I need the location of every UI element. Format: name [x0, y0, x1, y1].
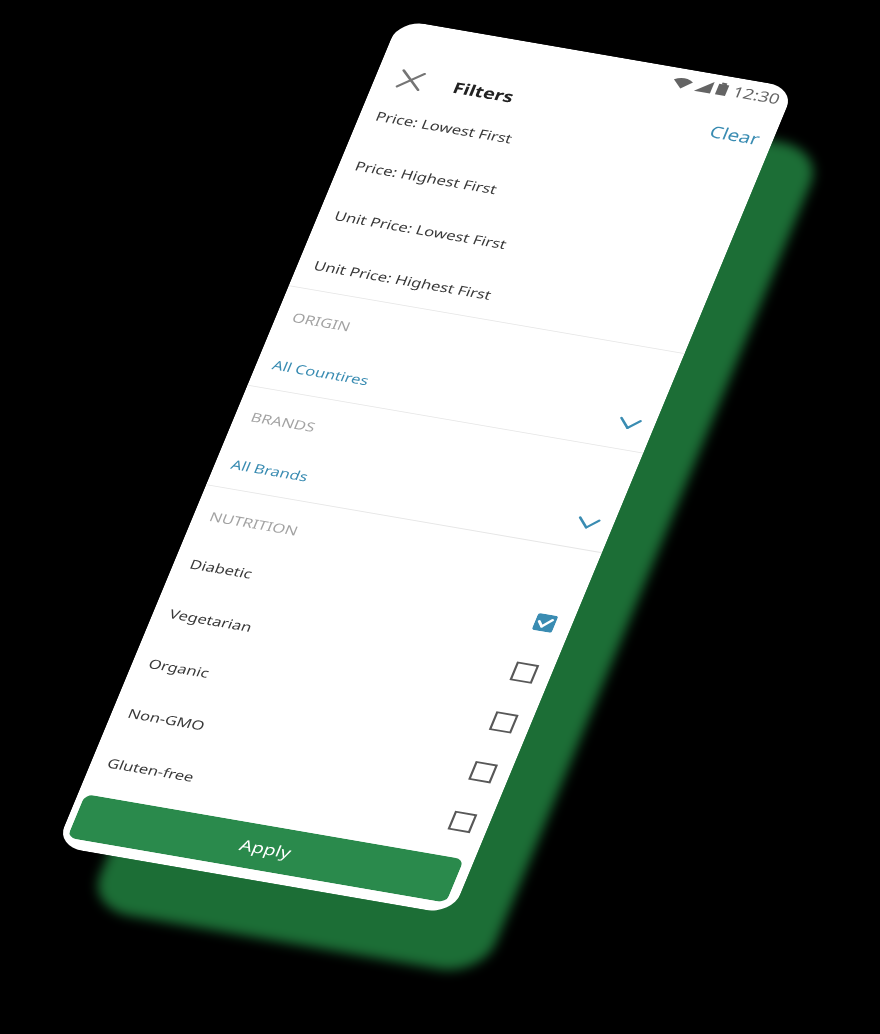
button[interactable]: Price: Highest First: [330, 136, 747, 254]
staticText: Organic: [146, 655, 213, 682]
button[interactable]: Gluten-free: [82, 733, 499, 851]
staticText: NUTRITION: [207, 508, 302, 540]
button[interactable]: NUTRITION: [186, 484, 602, 602]
staticText: Price: Lowest First: [373, 107, 515, 147]
staticText: Gluten-free: [104, 754, 198, 786]
button[interactable]: Price: Lowest First: [351, 86, 767, 204]
button[interactable]: Non-GMO: [103, 683, 520, 801]
staticText: Filters: [449, 77, 518, 107]
staticText: Non-GMO: [125, 704, 208, 734]
button[interactable]: Clear: [706, 121, 764, 150]
button[interactable]: BRANDS: [227, 385, 643, 503]
staticText: Price: Highest First: [352, 157, 500, 198]
staticText: Unit Price: Highest First: [311, 256, 495, 304]
staticText: All Brands: [228, 456, 311, 486]
staticText: Vegetarian: [166, 605, 256, 636]
button[interactable]: Diabetic: [165, 534, 581, 652]
staticText: Apply: [236, 834, 296, 863]
staticText: BRANDS: [248, 408, 319, 436]
staticText: 12:30: [729, 82, 784, 109]
button[interactable]: Organic: [124, 633, 540, 751]
staticText: ORIGIN: [289, 309, 354, 335]
button[interactable]: Unit Price: Lowest First: [309, 186, 726, 303]
staticText: Diabetic: [187, 555, 256, 583]
button[interactable]: All Brands: [206, 434, 623, 552]
button[interactable]: Unit Price: Highest First: [289, 235, 705, 353]
button[interactable]: Vegetarian: [144, 584, 561, 702]
staticText: All Countires: [270, 356, 373, 389]
button[interactable]: ORIGIN: [268, 285, 685, 403]
button[interactable]: Close: [394, 68, 427, 92]
button[interactable]: All Countires: [247, 335, 664, 453]
staticText: Unit Price: Lowest First: [331, 207, 510, 253]
button[interactable]: Apply: [67, 794, 464, 903]
